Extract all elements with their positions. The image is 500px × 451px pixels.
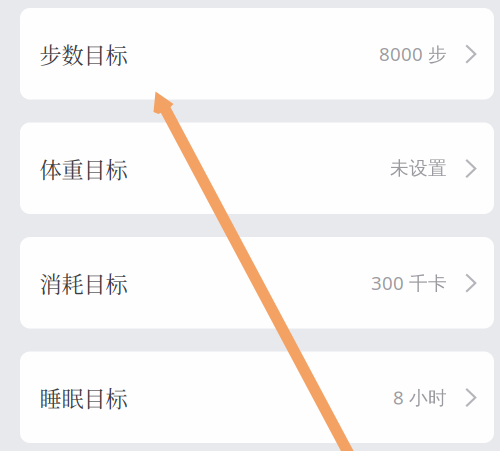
staticText: 未设置 (390, 157, 447, 180)
staticText: 睡眠目标 (39, 381, 127, 413)
staticText: 步数目标 (39, 38, 127, 70)
button[interactable]: 睡眠目标 (20, 351, 494, 443)
staticText: 体重目标 (39, 152, 127, 184)
button[interactable]: 体重目标 (20, 122, 494, 214)
staticText: 8 小时 (393, 385, 447, 410)
button[interactable]: 消耗目标 (20, 237, 494, 328)
button[interactable]: 步数目标 (20, 8, 494, 99)
staticText: 消耗目标 (39, 267, 127, 299)
staticText: 8000 步 (379, 41, 447, 66)
staticText: 300 千卡 (371, 270, 447, 295)
